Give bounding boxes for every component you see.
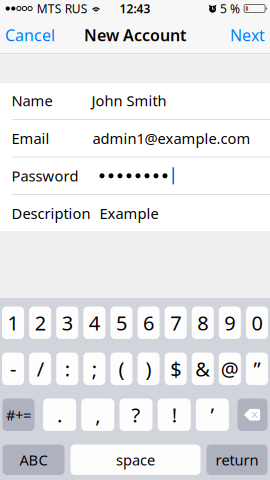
staticText: ! [172,401,177,428]
staticText: ’ [210,401,214,428]
button[interactable]: 5 [110,306,132,339]
button[interactable]: 9 [219,306,241,339]
button[interactable]: 3 [56,306,78,339]
staticText: 7 [170,309,181,336]
button[interactable]: . [43,398,76,431]
button[interactable]: 2 [29,306,51,339]
staticText: 0 [251,309,262,336]
staticText: . [57,401,62,428]
button[interactable]: Delete [237,398,267,431]
staticText: 3 [62,309,73,336]
staticText: Cancel [5,24,55,46]
staticText: 5 % [220,0,240,16]
staticText: #+= [6,405,31,424]
staticText: $ [170,355,181,382]
button[interactable]: ? [119,398,152,431]
staticText: 12:43 [119,0,150,16]
staticText: ? [131,401,140,428]
button[interactable]: ABC [2,444,64,475]
staticText: ABC [19,450,47,469]
staticText: 8 [197,309,208,336]
staticText: Name [11,91,52,110]
button[interactable]: return [206,444,267,475]
staticText: admin1@example.com [92,128,250,148]
button[interactable]: ( [110,352,132,385]
button[interactable]: / [29,352,51,385]
staticText: : [65,355,70,382]
staticText: space [116,450,155,469]
staticText: & [195,355,210,382]
button[interactable]: 8 [192,306,214,339]
button[interactable]: #+= [2,398,34,431]
staticText: 2 [35,309,46,336]
staticText: ” [253,355,260,382]
staticText: 1 [8,309,19,336]
staticText: ; [92,355,97,382]
staticText: 6 [143,309,154,336]
staticText: / [37,355,44,382]
button[interactable]: , [81,398,114,431]
staticText: Description [11,204,90,223]
staticText: 9 [224,309,235,336]
staticText: MTS RUS [37,0,88,16]
button[interactable]: ; [83,352,105,385]
staticText: New Account [84,24,186,46]
staticText: @ [221,355,239,382]
button[interactable]: 7 [165,306,187,339]
button[interactable]: Cancel [1,17,59,53]
button[interactable]: Next [226,17,269,53]
button[interactable]: 0 [246,306,268,339]
staticText: Password [11,166,78,186]
staticText: - [10,355,16,382]
button[interactable]: $ [165,352,187,385]
button[interactable]: - [2,352,24,385]
button[interactable]: & [192,352,214,385]
button[interactable]: 4 [83,306,105,339]
button[interactable]: ! [158,398,191,431]
staticText: ) [146,355,152,382]
button[interactable]: ) [138,352,160,385]
staticText: 4 [89,309,100,336]
staticText: ( [118,355,124,382]
staticText: Example [99,204,158,223]
button[interactable]: : [56,352,78,385]
staticText: 5 [116,309,127,336]
staticText: , [95,401,100,428]
button[interactable]: space [70,444,200,475]
staticText: return [215,450,258,469]
button[interactable]: 1 [2,306,24,339]
staticText: Email [11,128,49,148]
button[interactable]: @ [219,352,241,385]
button[interactable]: 6 [138,306,160,339]
staticText: Next [230,24,265,46]
button[interactable]: ’ [196,398,229,431]
staticText: John Smith [91,91,166,110]
button[interactable]: ” [246,352,268,385]
